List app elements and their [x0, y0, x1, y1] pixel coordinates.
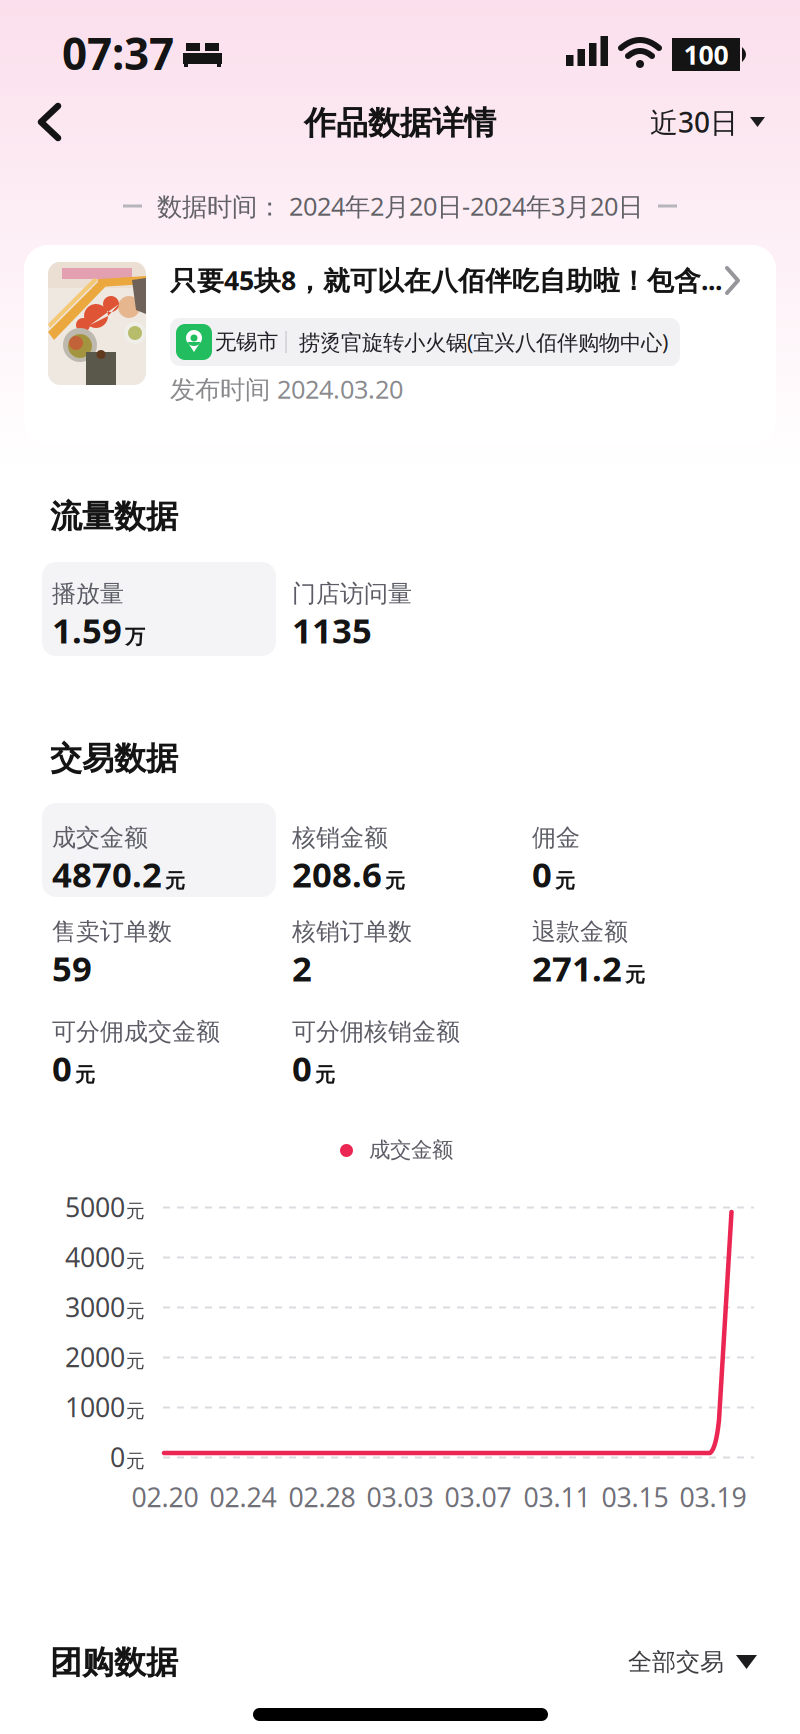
staticText: 元 — [625, 962, 645, 987]
staticText: 5000 — [65, 1189, 125, 1225]
staticText: 100 — [683, 37, 728, 72]
staticText: 02.20 — [131, 1479, 198, 1515]
staticText: 2000 — [65, 1339, 125, 1375]
staticText: 0 — [52, 1045, 72, 1091]
staticText: 元 — [555, 868, 575, 893]
staticText: 核销订单数 — [292, 917, 412, 946]
staticText: 只要45块8，就可以在八佰伴吃自助啦！包含... — [170, 262, 722, 298]
staticText: 59 — [52, 945, 92, 991]
button[interactable]: 只要45块8，就可以在八佰伴吃自助啦！包含... — [24, 245, 776, 445]
button[interactable]: 近30日 — [650, 100, 765, 144]
staticText: 元 — [315, 1062, 335, 1087]
staticText: 可分佣成交金额 — [52, 1017, 220, 1046]
staticText: 无锡市 — [215, 329, 278, 355]
staticText: 流量数据 — [50, 497, 178, 536]
staticText: 元 — [165, 868, 185, 893]
staticText: 可分佣核销金额 — [292, 1017, 460, 1046]
staticText: 02.24 — [209, 1479, 276, 1515]
staticText: 播放量 — [52, 579, 124, 608]
staticText: 全部交易 — [628, 1647, 724, 1677]
staticText: 1000 — [65, 1389, 125, 1425]
staticText: 4000 — [65, 1239, 125, 1275]
staticText: 核销金额 — [292, 823, 388, 852]
staticText: 03.11 — [523, 1479, 590, 1515]
staticText: 271.2 — [532, 945, 622, 991]
staticText: 元 — [126, 1250, 145, 1273]
staticText: 1.59 — [52, 607, 122, 653]
button[interactable]: 全部交易 — [628, 1640, 757, 1684]
staticText: 捞烫官旋转小火锅(宜兴八佰伴购物中心) — [299, 328, 668, 356]
staticText: 元 — [126, 1350, 145, 1373]
staticText: 交易数据 — [50, 739, 178, 778]
staticText: 4870.2 — [52, 851, 162, 897]
staticText: 数据时间： 2024年2月20日-2024年3月20日 — [157, 189, 643, 223]
staticText: 成交金额 — [369, 1137, 453, 1163]
staticText: 元 — [126, 1300, 145, 1323]
staticText: 元 — [385, 868, 405, 893]
staticText: 02.28 — [288, 1479, 355, 1515]
staticText: 佣金 — [532, 823, 580, 852]
staticText: 03.15 — [601, 1479, 668, 1515]
staticText: 3000 — [65, 1289, 125, 1325]
staticText: 07:37 — [62, 24, 174, 82]
staticText: 0 — [532, 851, 552, 897]
staticText: 退款金额 — [532, 917, 628, 946]
staticText: 1135 — [292, 607, 372, 653]
staticText: 成交金额 — [52, 823, 148, 852]
button[interactable]: Back — [30, 96, 74, 148]
staticText: 208.6 — [292, 851, 382, 897]
staticText: 元 — [75, 1062, 95, 1087]
staticText: 03.07 — [444, 1479, 511, 1515]
staticText: 03.19 — [679, 1479, 746, 1515]
staticText: 元 — [126, 1400, 145, 1423]
staticText: 万 — [125, 624, 145, 649]
staticText: 门店访问量 — [292, 579, 412, 608]
staticText: 元 — [126, 1450, 145, 1473]
staticText: 作品数据详情 — [304, 103, 496, 143]
staticText: 近30日 — [650, 103, 738, 141]
staticText: 0 — [110, 1439, 125, 1475]
staticText: 0 — [292, 1045, 312, 1091]
staticText: 发布时间 2024.03.20 — [170, 372, 403, 406]
staticText: 团购数据 — [50, 1643, 178, 1682]
staticText: 售卖订单数 — [52, 917, 172, 946]
staticText: 03.03 — [366, 1479, 433, 1515]
staticText: 2 — [292, 945, 312, 991]
staticText: 元 — [126, 1200, 145, 1223]
